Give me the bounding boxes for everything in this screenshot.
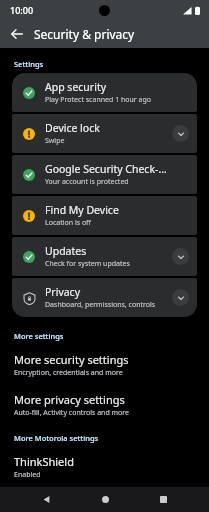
staticText: 10:00	[10, 4, 34, 16]
staticText: Swipe	[45, 136, 65, 146]
staticText: Find My Device	[45, 203, 119, 217]
button[interactable]: Device lock	[12, 114, 197, 153]
button[interactable]: Google Security Check-Up	[12, 155, 197, 194]
staticText: Auto-fill, Activity controls and more	[14, 408, 130, 418]
staticText: More security settings	[14, 352, 129, 367]
button[interactable]: ThinkShield	[0, 453, 209, 481]
staticText: Privacy	[45, 285, 81, 299]
button[interactable]: Back	[33, 487, 59, 512]
button[interactable]: More security settings	[0, 351, 209, 379]
button[interactable]: More privacy settings	[0, 391, 209, 419]
staticText: ThinkShield	[14, 454, 74, 469]
staticText: Device lock	[45, 121, 100, 135]
button[interactable]: Recent apps	[150, 487, 176, 512]
staticText: Updates	[45, 244, 87, 258]
button[interactable]: Privacy	[12, 278, 197, 317]
staticText: Check for system updates	[45, 259, 130, 269]
staticText: Your account is protected	[45, 177, 129, 187]
button[interactable]: Updates	[12, 237, 197, 276]
button[interactable]: Find My Device	[12, 196, 197, 235]
staticText: Dashboard, permissions, controls	[45, 300, 156, 310]
button[interactable]: Expand	[172, 289, 189, 306]
staticText: Location is off	[45, 218, 91, 228]
staticText: More Motorola settings	[14, 433, 99, 443]
button[interactable]: App security	[12, 73, 197, 112]
button[interactable]: Expand	[172, 248, 189, 265]
button[interactable]: Back	[7, 24, 27, 44]
button[interactable]: Expand	[172, 125, 189, 142]
staticText: Settings	[14, 59, 44, 69]
staticText: More privacy settings	[14, 392, 125, 407]
button[interactable]: Home	[92, 487, 118, 512]
staticText: Enabled	[14, 470, 41, 480]
staticText: More settings	[14, 331, 64, 341]
staticText: Security & privacy	[34, 26, 135, 42]
staticText: Encryption, credentials and more	[14, 368, 123, 378]
staticText: Google Security Check-Up	[45, 162, 172, 176]
staticText: Play Protect scanned 1 hour ago	[45, 95, 152, 105]
staticText: App security	[45, 80, 107, 94]
